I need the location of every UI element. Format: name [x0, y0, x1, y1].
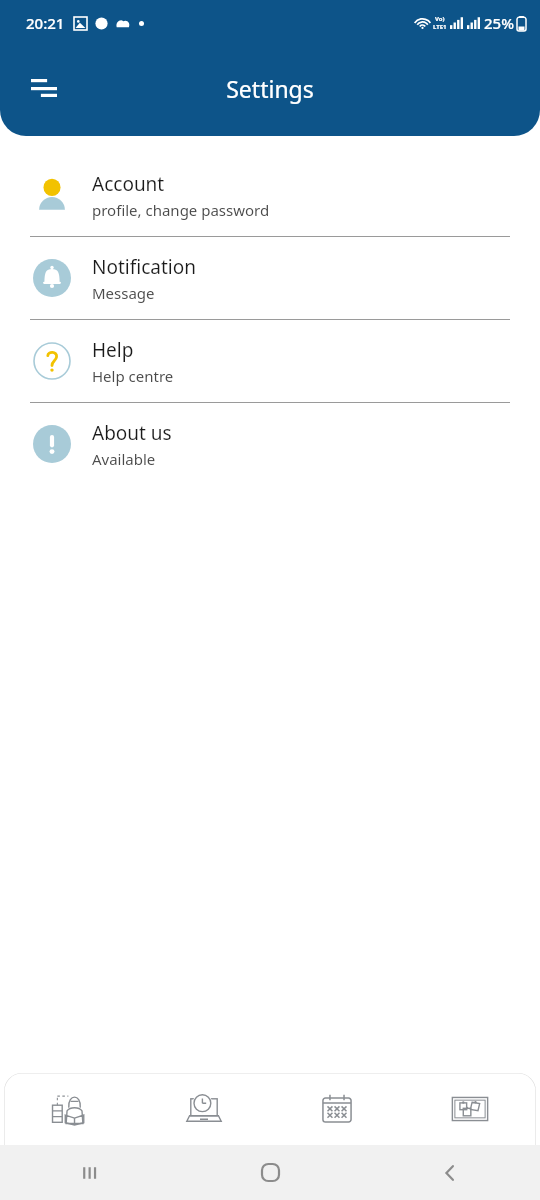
button[interactable]: Back [360, 1145, 540, 1200]
staticText: Available [92, 449, 156, 469]
button[interactable]: Menu [20, 64, 68, 112]
button[interactable]: Calendar [270, 1073, 403, 1145]
staticText: Help centre [92, 366, 174, 386]
button[interactable]: Home [180, 1145, 360, 1200]
button[interactable]: Help [0, 320, 540, 402]
staticText: Account [92, 171, 165, 197]
button[interactable]: About us [0, 403, 540, 485]
staticText: LTE1 [433, 23, 447, 31]
staticText: Notification [92, 254, 196, 280]
button[interactable]: Board [403, 1073, 536, 1145]
staticText: profile, change password [92, 200, 270, 220]
staticText: Help [92, 337, 134, 363]
button[interactable]: Recent apps [0, 1145, 180, 1200]
button[interactable]: Account [0, 154, 540, 236]
staticText: 25% [484, 13, 514, 33]
button[interactable]: Schedule [137, 1073, 270, 1145]
staticText: Message [92, 283, 155, 303]
button[interactable]: Notification [0, 237, 540, 319]
staticText: Settings [0, 73, 540, 104]
staticText: About us [92, 420, 172, 446]
staticText: 20:21 [26, 13, 65, 33]
staticText: Vo) [435, 15, 445, 23]
button[interactable]: Library [4, 1073, 137, 1145]
